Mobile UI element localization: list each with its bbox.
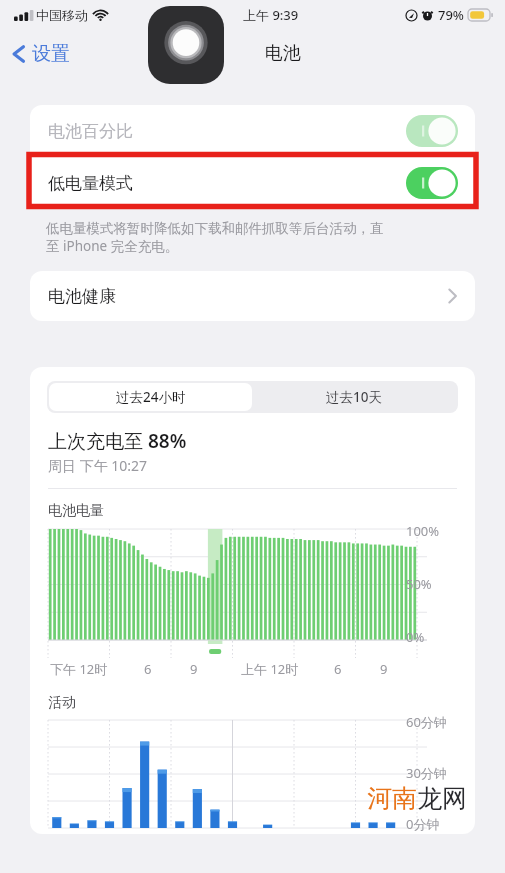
staticText: 电池百分比: [48, 121, 133, 142]
staticText: 上午 12时: [241, 660, 334, 678]
staticText: 下午 12时: [50, 660, 144, 678]
staticText: 30分钟: [406, 764, 447, 782]
staticText: 100%: [406, 522, 440, 540]
staticText: 50%: [406, 575, 432, 593]
staticText: 电池健康: [48, 286, 116, 307]
staticText: 上午 9:39: [243, 6, 299, 24]
staticText: 过去24小时: [116, 388, 186, 406]
staticText: 过去10天: [326, 388, 382, 406]
staticText: 6: [144, 660, 190, 678]
staticText: 活动: [48, 694, 76, 712]
staticText: 河南: [367, 783, 417, 814]
staticText: 中国移动: [36, 7, 88, 23]
staticText: 6: [334, 660, 380, 678]
staticText: 电池: [265, 42, 301, 65]
button[interactable]: 电池健康: [30, 271, 475, 321]
staticText: 0%: [406, 628, 425, 646]
staticText: 79%: [438, 6, 464, 24]
button[interactable]: 低电量模式: [30, 157, 475, 209]
staticText: 设置: [32, 42, 70, 66]
staticText: 电池电量: [48, 502, 104, 520]
staticText: 低电量模式将暂时降低如下载和邮件抓取等后台活动，直: [46, 220, 384, 237]
staticText: 周日 下午 10:27: [48, 456, 148, 475]
staticText: 龙网: [417, 783, 467, 814]
staticText: 9: [190, 660, 241, 678]
staticText: 上次充电至 88%: [48, 428, 187, 454]
staticText: 9: [380, 660, 417, 678]
staticText: 60分钟: [406, 713, 447, 731]
staticText: 低电量模式: [48, 173, 133, 194]
staticText: 至 iPhone 完全充电。: [46, 237, 179, 255]
button[interactable]: 设置: [0, 36, 82, 72]
button[interactable]: 过去10天: [252, 383, 456, 411]
button[interactable]: 电池百分比: [30, 105, 475, 157]
button[interactable]: 过去24小时: [49, 383, 252, 411]
staticText: 0分钟: [406, 815, 440, 833]
